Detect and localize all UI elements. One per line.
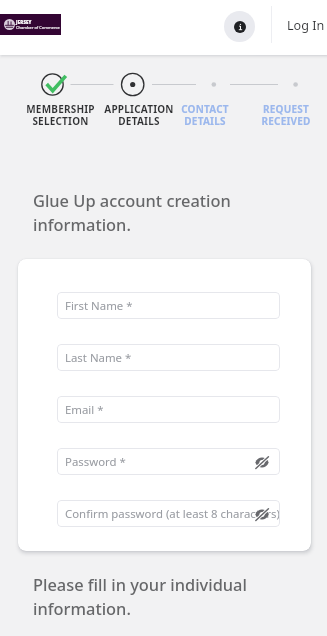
button[interactable]: REQUEST RECEIVED: [241, 102, 327, 128]
staticText: Chamber of Commerce: [16, 25, 60, 30]
staticText: JERSEY: [16, 19, 32, 25]
staticText: Confirm password (at least 8 characters): [65, 506, 280, 522]
button[interactable]: APPLICATION DETAILS: [94, 102, 184, 128]
button[interactable]: Show password: [254, 454, 270, 470]
button[interactable]: Show password: [254, 506, 270, 522]
staticText: First Name *: [65, 298, 280, 314]
staticText: Please fill in your individual informati…: [33, 573, 247, 620]
button[interactable]: MEMBERSHIP SELECTION: [15, 102, 105, 128]
button[interactable]: Jersey Chamber of Commerce logo: [0, 14, 61, 35]
staticText: CONTACT DETAILS: [181, 102, 229, 128]
staticText: Glue Up account creation information.: [33, 189, 231, 236]
button[interactable]: Help: [224, 11, 255, 42]
button[interactable]: Last Name *: [57, 344, 280, 371]
button[interactable]: Password *: [57, 448, 280, 475]
staticText: APPLICATION DETAILS: [104, 102, 174, 128]
staticText: Log In: [287, 17, 325, 34]
staticText: Last Name *: [65, 350, 280, 366]
staticText: Password *: [65, 454, 280, 470]
button[interactable]: Log In: [287, 9, 325, 41]
staticText: MEMBERSHIP SELECTION: [26, 102, 95, 128]
button[interactable]: CONTACT DETAILS: [160, 102, 250, 128]
button[interactable]: First Name *: [57, 292, 280, 319]
staticText: Email *: [65, 402, 280, 418]
button[interactable]: Confirm password (at least 8 characters): [57, 500, 280, 527]
button[interactable]: Email *: [57, 396, 280, 423]
staticText: REQUEST RECEIVED: [261, 102, 311, 128]
